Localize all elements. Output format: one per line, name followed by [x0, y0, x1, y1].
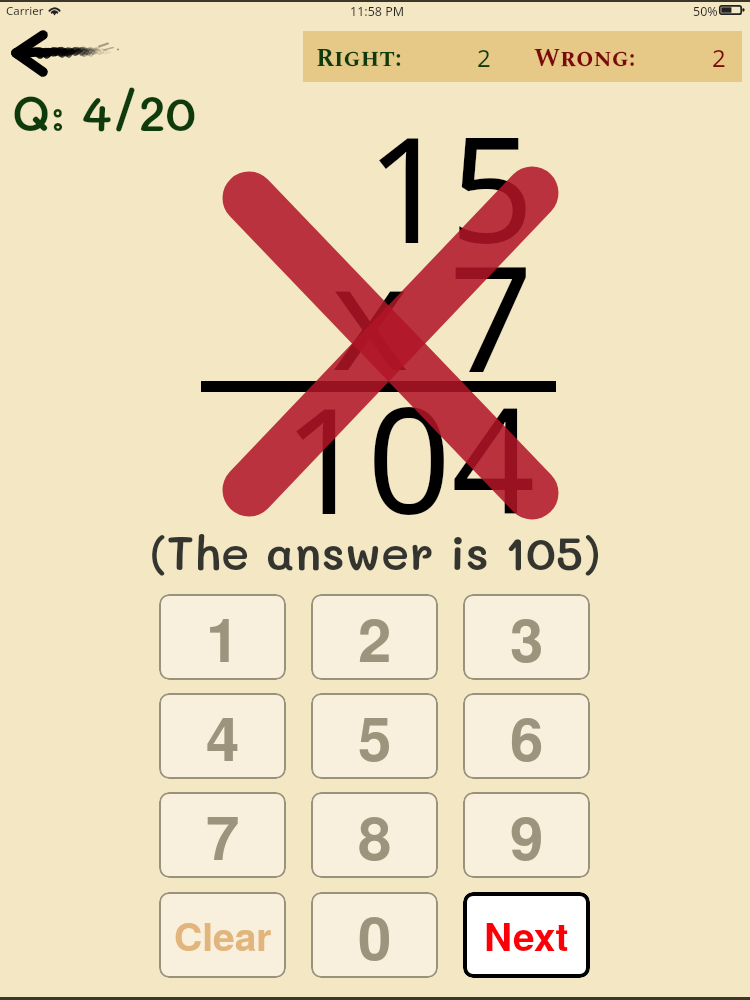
staticText: Carrier — [6, 3, 44, 19]
staticText: 4 — [206, 693, 240, 779]
button[interactable]: 5 — [311, 693, 438, 779]
button[interactable]: Clear — [159, 892, 286, 978]
staticText: 5 — [358, 693, 392, 779]
staticText: x — [331, 213, 409, 413]
staticText: 2 — [477, 41, 491, 74]
button[interactable]: 1 — [159, 594, 286, 680]
staticText: Wrong: — [534, 40, 636, 78]
staticText: 8 — [358, 792, 392, 878]
staticText: 0 — [358, 892, 392, 978]
staticText: 6 — [510, 693, 544, 779]
button[interactable]: 3 — [463, 594, 590, 680]
staticText: 9 — [510, 792, 544, 878]
button[interactable]: Next — [463, 892, 590, 978]
button[interactable]: 7 — [159, 792, 286, 878]
staticText: 1 — [206, 594, 240, 680]
staticText: Next — [484, 907, 569, 963]
staticText: 7 — [449, 215, 534, 415]
button[interactable]: 8 — [311, 792, 438, 878]
staticText: Clear — [174, 907, 272, 963]
staticText: 11:58 PM — [350, 3, 405, 20]
staticText: Q: 4/20 — [12, 81, 196, 143]
staticText: (The answer is 105) — [0, 521, 750, 582]
staticText: 15 — [366, 86, 535, 286]
button[interactable]: 4 — [159, 693, 286, 779]
staticText: 2 — [358, 594, 392, 680]
staticText: 50% — [693, 3, 718, 20]
button[interactable]: Back — [0, 26, 135, 82]
staticText: Right: — [316, 40, 402, 78]
staticText: 2 — [712, 41, 726, 74]
button[interactable]: 9 — [463, 792, 590, 878]
staticText: 3 — [510, 594, 544, 680]
button[interactable]: 2 — [311, 594, 438, 680]
staticText: 104 — [283, 357, 536, 557]
button[interactable]: 6 — [463, 693, 590, 779]
staticText: 7 — [206, 792, 240, 878]
button[interactable]: 0 — [311, 892, 438, 978]
